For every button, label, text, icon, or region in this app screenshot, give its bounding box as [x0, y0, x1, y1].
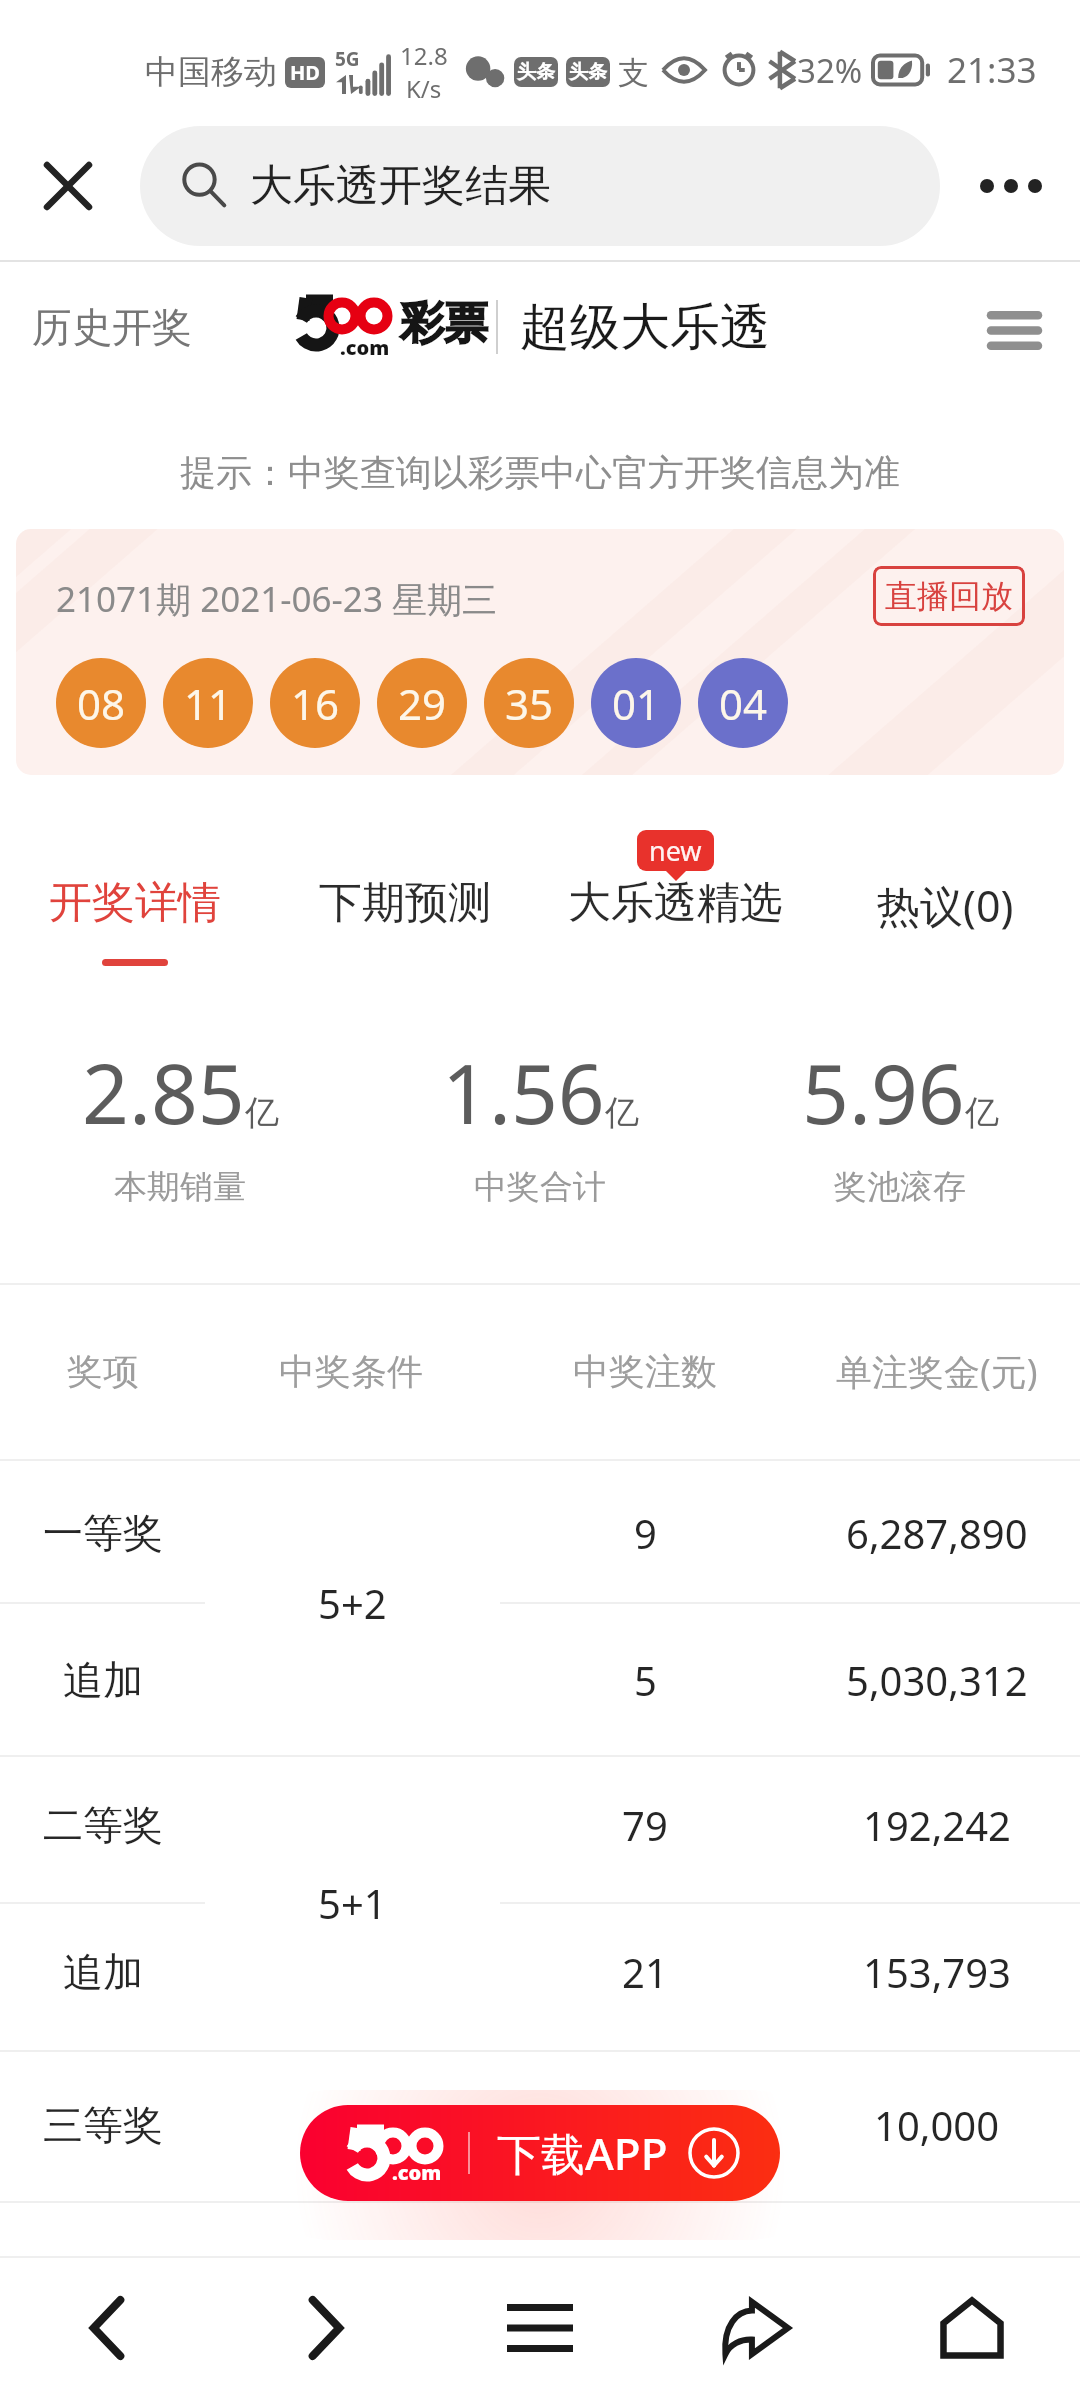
staticText: 21: [622, 1945, 668, 1999]
staticText: 大乐透精选: [568, 876, 783, 930]
staticText: 中国移动: [145, 51, 277, 93]
staticText: 21:33: [947, 46, 1037, 94]
staticText: 中奖注数: [573, 1349, 717, 1394]
staticText: 追加: [63, 1655, 143, 1705]
staticText: 10,000: [874, 2098, 1000, 2152]
staticText: 5,030,312: [846, 1653, 1028, 1707]
button[interactable]: Home: [864, 2256, 1080, 2400]
staticText: 5+1: [318, 1876, 387, 1930]
staticText: 11: [184, 675, 233, 732]
button[interactable]: Close: [26, 144, 110, 228]
staticText: 历史开奖: [32, 302, 192, 352]
staticText: 支: [618, 53, 649, 92]
staticText: 三等奖: [43, 2100, 163, 2150]
staticText: HD: [290, 59, 320, 86]
staticText: 大乐透开奖结果: [250, 159, 551, 213]
button[interactable]: Menu: [970, 283, 1058, 371]
staticText: 9: [634, 1506, 657, 1560]
staticText: 5G: [335, 46, 360, 72]
staticText: 中奖合计: [474, 1166, 606, 1208]
staticText: 亿: [245, 1091, 279, 1134]
staticText: 04: [719, 675, 768, 732]
staticText: 中奖条件: [279, 1349, 423, 1394]
staticText: 192,242: [863, 1798, 1011, 1852]
staticText: K/s: [406, 72, 442, 105]
staticText: .com: [340, 334, 390, 361]
staticText: new: [649, 832, 702, 869]
staticText: 5: [634, 1653, 657, 1707]
button[interactable]: Share: [648, 2256, 864, 2400]
staticText: 奖项: [67, 1349, 139, 1394]
staticText: 一等奖: [43, 1508, 163, 1558]
staticText: .com: [392, 2159, 442, 2186]
staticText: 头条: [517, 60, 555, 84]
staticText: 追加: [63, 1947, 143, 1997]
staticText: 16: [291, 675, 340, 732]
button[interactable]: 开奖详情: [0, 830, 270, 990]
staticText: 下期预测: [319, 876, 491, 930]
staticText: 79: [622, 1798, 668, 1852]
staticText: 本期销量: [114, 1166, 246, 1208]
button[interactable]: Tabs: [432, 2256, 648, 2400]
button[interactable]: 历史开奖: [32, 286, 192, 368]
staticText: 亿: [965, 1091, 999, 1134]
staticText: 6,287,890: [846, 1506, 1028, 1560]
staticText: 5.96: [802, 1036, 965, 1148]
button[interactable]: 直播回放: [873, 566, 1025, 626]
button[interactable]: Download the 500.com app: [300, 2105, 780, 2201]
staticText: 2.85: [82, 1036, 245, 1148]
staticText: 亿: [605, 1091, 639, 1134]
staticText: 35: [505, 675, 554, 732]
button[interactable]: 下期预测: [270, 830, 540, 990]
staticText: 12.8: [400, 39, 448, 72]
staticText: 32%: [797, 48, 863, 93]
staticText: 5+2: [318, 1576, 387, 1630]
staticText: 奖池滚存: [834, 1166, 966, 1208]
staticText: 超级大乐透: [520, 296, 770, 359]
staticText: 提示：中奖查询以彩票中心官方开奖信息为准: [180, 450, 900, 495]
staticText: 彩票: [400, 296, 488, 351]
button[interactable]: Back: [0, 2256, 216, 2400]
staticText: 08: [77, 675, 126, 732]
button[interactable]: 大乐透开奖结果: [140, 126, 940, 246]
button[interactable]: 大乐透精选: [540, 830, 810, 990]
staticText: 热议(0): [877, 876, 1014, 935]
staticText: 开奖详情: [49, 876, 221, 930]
button[interactable]: 热议(0): [810, 830, 1080, 990]
staticText: 单注奖金(元): [836, 1347, 1038, 1396]
staticText: 直播回放: [885, 576, 1013, 616]
staticText: 1.56: [442, 1036, 605, 1148]
button[interactable]: More options: [966, 141, 1056, 231]
staticText: 01: [612, 675, 661, 732]
staticText: 头条: [569, 60, 607, 84]
staticText: 21071期 2021-06-23 星期三: [56, 575, 498, 623]
staticText: 29: [398, 675, 447, 732]
button[interactable]: Forward: [216, 2256, 432, 2400]
staticText: 153,793: [863, 1945, 1011, 1999]
staticText: 二等奖: [43, 1800, 163, 1850]
staticText: 下载APP: [497, 2123, 668, 2183]
